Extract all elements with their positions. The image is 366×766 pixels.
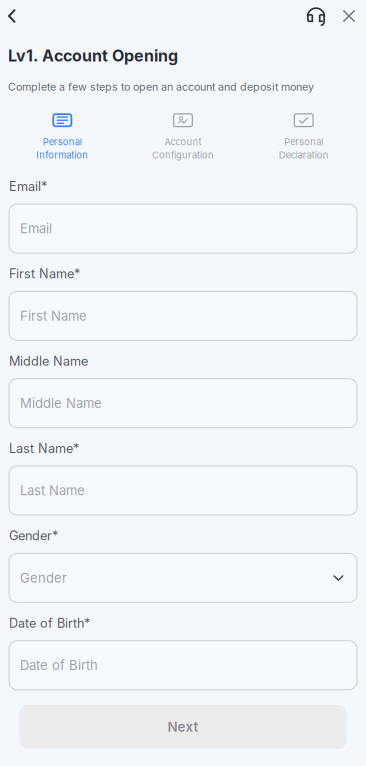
button[interactable]: Middle Name bbox=[9, 379, 357, 428]
button[interactable]: Personal bbox=[2, 113, 123, 161]
button[interactable]: Customer support bbox=[296, 3, 336, 29]
staticText: Personal bbox=[43, 136, 82, 147]
button[interactable]: Close bbox=[336, 3, 362, 29]
button[interactable]: Gender bbox=[9, 553, 357, 602]
staticText: First Name bbox=[20, 308, 87, 324]
staticText: Date of Birth* bbox=[9, 615, 90, 631]
staticText: Middle Name bbox=[9, 353, 88, 369]
staticText: Email* bbox=[9, 179, 47, 194]
button[interactable]: First Name bbox=[9, 291, 357, 340]
staticText: Personal bbox=[284, 136, 323, 147]
staticText: Last Name bbox=[20, 483, 85, 498]
staticText: Middle Name bbox=[20, 395, 102, 411]
staticText: Gender* bbox=[9, 528, 58, 543]
staticText: Email bbox=[20, 221, 52, 236]
button[interactable]: Back bbox=[0, 3, 24, 29]
staticText: First Name* bbox=[9, 266, 80, 281]
button[interactable]: Last Name bbox=[9, 466, 357, 515]
staticText: Declaration bbox=[279, 149, 329, 161]
button[interactable]: Date of Birth bbox=[9, 641, 357, 690]
button[interactable]: Personal bbox=[243, 113, 364, 161]
button[interactable]: Email bbox=[9, 204, 357, 253]
staticText: Lv1. Account Opening bbox=[8, 46, 178, 65]
staticText: Account bbox=[164, 136, 201, 147]
staticText: Complete a few steps to open an account … bbox=[8, 80, 314, 93]
button[interactable]: Next bbox=[19, 705, 346, 749]
staticText: Gender bbox=[20, 570, 67, 586]
staticText: Last Name* bbox=[9, 441, 79, 456]
staticText: Configuration bbox=[152, 149, 214, 161]
staticText: Information bbox=[36, 149, 88, 161]
staticText: Date of Birth bbox=[20, 657, 98, 673]
button[interactable]: Account bbox=[123, 113, 243, 161]
staticText: Next bbox=[167, 719, 198, 735]
